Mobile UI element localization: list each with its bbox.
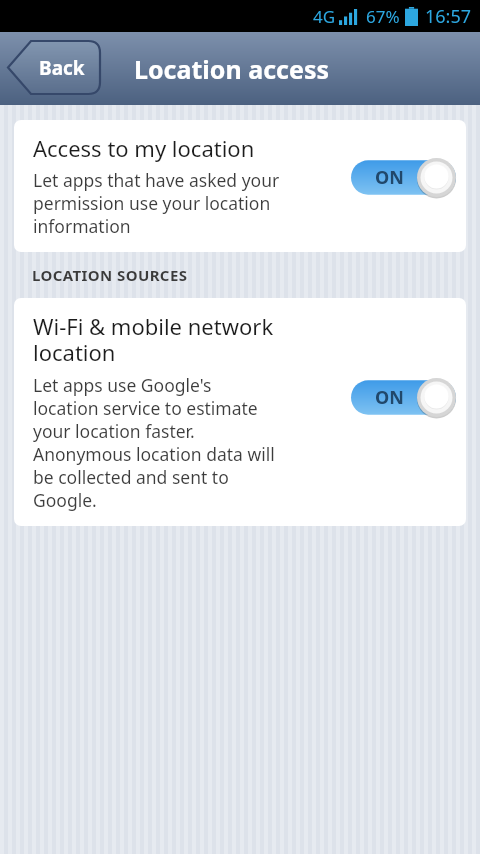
staticText: Location access <box>134 52 329 86</box>
button[interactable]: ON <box>351 158 456 197</box>
button[interactable]: ON <box>351 378 456 417</box>
staticText: Let apps use Google's location service t… <box>33 373 275 512</box>
staticText: Wi-Fi & mobile network location <box>33 311 274 368</box>
staticText: 4G <box>313 5 336 28</box>
button[interactable]: Back <box>8 41 100 94</box>
staticText: 16:57 <box>425 4 472 29</box>
staticText: Access to my location <box>33 133 255 163</box>
staticText: LOCATION SOURCES <box>32 265 188 285</box>
staticText: 67% <box>366 5 400 28</box>
button[interactable]: Access to my location <box>14 120 466 252</box>
staticText: Let apps that have asked your permission… <box>33 168 280 238</box>
staticText: ON <box>375 385 404 410</box>
staticText: Back <box>39 55 85 81</box>
button[interactable]: Wi-Fi & mobile network location <box>14 298 466 526</box>
staticText: ON <box>375 165 404 190</box>
